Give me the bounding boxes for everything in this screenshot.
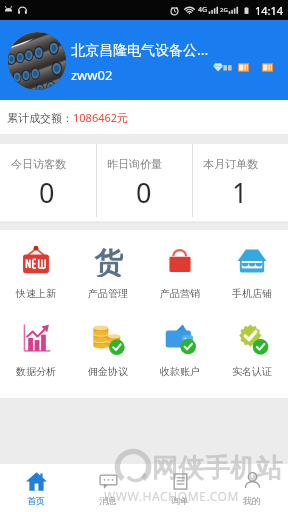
staticText: 0 — [39, 174, 55, 211]
staticText: zww02 — [71, 66, 113, 84]
button[interactable]: 首页 — [0, 464, 72, 512]
button[interactable]: 昨日询价量 — [97, 144, 192, 221]
button[interactable]: Shop avatar — [8, 32, 66, 90]
staticText: 网侠手机站 — [152, 452, 282, 485]
staticText: 询单 — [171, 495, 189, 506]
staticText: 收款账户 — [160, 365, 200, 378]
button[interactable]: 产品营销 — [144, 245, 216, 300]
button[interactable]: 今日访客数 — [0, 144, 96, 221]
staticText: 消息 — [99, 495, 117, 506]
button[interactable]: 实名认证 — [216, 321, 288, 378]
staticText: 0 — [136, 174, 152, 211]
staticText: 4G — [198, 5, 208, 15]
button[interactable]: 累计成交额： — [0, 100, 288, 134]
button[interactable]: 本月订单数 — [193, 144, 288, 221]
staticText: 快速上新 — [16, 287, 56, 300]
other: Diamond level — [213, 62, 233, 72]
button[interactable]: zww02 — [71, 66, 113, 84]
staticText: 今日访客数 — [11, 157, 66, 171]
staticText: 1 — [232, 174, 248, 211]
staticText: 首页 — [27, 495, 45, 506]
button[interactable]: 佣金协议 — [72, 321, 144, 378]
staticText: 我的 — [243, 495, 261, 506]
button[interactable]: 手机店铺 — [216, 245, 288, 300]
button[interactable]: 北京昌隆电气设备公... — [71, 40, 219, 59]
staticText: 1086462元 — [73, 110, 129, 125]
staticText: 产品管理 — [88, 287, 128, 300]
button[interactable]: 我的 — [216, 464, 288, 512]
button[interactable]: 收款账户 — [144, 321, 216, 378]
staticText: 实名认证 — [232, 365, 272, 378]
staticText: 昨日询价量 — [107, 157, 162, 171]
staticText: WWW.HACHOME.COM — [104, 488, 240, 504]
staticText: 货 — [94, 245, 123, 277]
staticText: 累计成交额： — [7, 111, 73, 125]
button[interactable]: 货 — [72, 245, 144, 300]
staticText: 数据分析 — [16, 365, 56, 378]
staticText: 北京昌隆电气设备公... — [71, 40, 209, 59]
staticText: 佣金协议 — [88, 365, 128, 378]
staticText: 14:14 — [255, 3, 284, 18]
staticText: 手机店铺 — [232, 287, 272, 300]
staticText: 本月订单数 — [203, 157, 258, 171]
staticText: 2G — [220, 6, 228, 14]
button[interactable]: 消息 — [72, 464, 144, 512]
other: Certified badge — [238, 63, 249, 72]
staticText: 产品营销 — [160, 287, 200, 300]
button[interactable]: 快速上新 — [0, 245, 72, 300]
button[interactable]: 数据分析 — [0, 321, 72, 378]
other: VIP badge — [262, 63, 273, 72]
button[interactable]: 询单 — [144, 464, 216, 512]
